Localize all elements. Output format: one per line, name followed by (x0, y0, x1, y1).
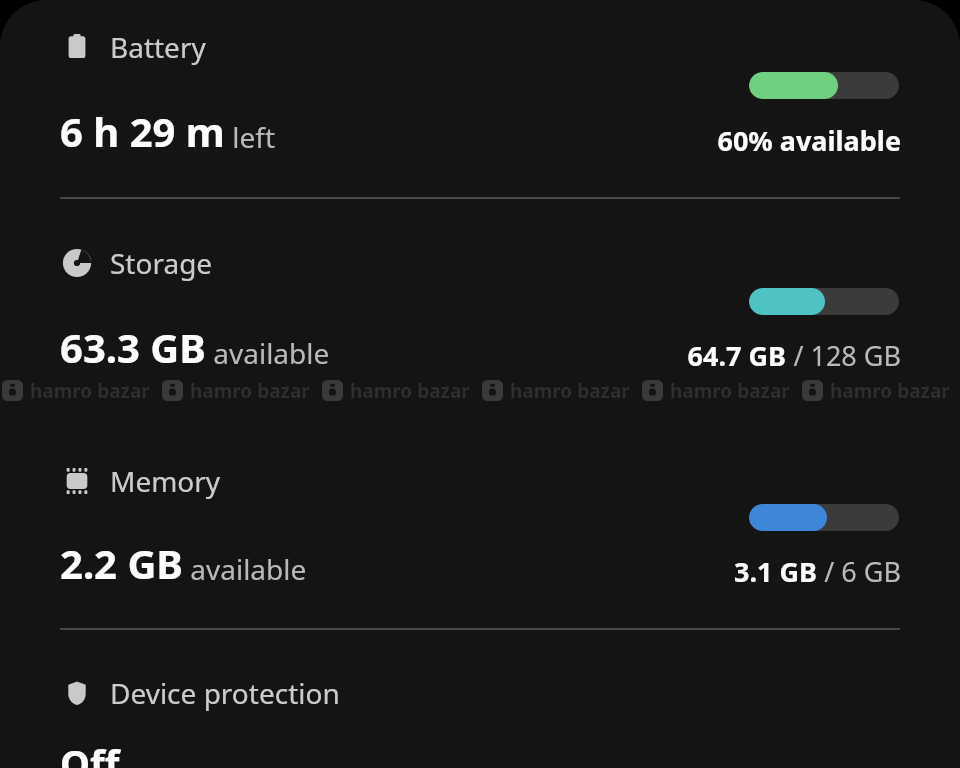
other: Storage (62, 248, 92, 278)
staticText: 6 h 29 m (60, 104, 225, 158)
staticText: 60% available (717, 122, 901, 159)
staticText: 64.7 GB (687, 337, 786, 374)
staticText: hamro bazar (190, 378, 310, 404)
staticText: Off (60, 737, 120, 768)
staticText: 63.3 GB (60, 320, 206, 374)
staticText: Battery (110, 28, 206, 66)
staticText: 2.2 GB (60, 536, 183, 590)
other: Memory (62, 466, 92, 496)
staticText: Memory (110, 462, 221, 500)
staticText: hamro bazar (30, 378, 150, 404)
staticText: hamro bazar (350, 378, 470, 404)
staticText: hamro bazar (830, 378, 950, 404)
button[interactable]: Battery (0, 0, 960, 198)
button[interactable]: Storage (0, 198, 960, 414)
staticText: / 128 GB (786, 337, 901, 374)
other: Device protection (62, 678, 92, 708)
staticText: available (183, 550, 307, 588)
staticText: / 6 GB (817, 553, 901, 590)
staticText: 3.1 GB (734, 553, 817, 590)
staticText: left (225, 118, 276, 156)
staticText: hamro bazar (670, 378, 790, 404)
staticText: Storage (110, 244, 213, 282)
button[interactable]: Device protection (0, 629, 960, 768)
staticText: Device protection (110, 674, 340, 712)
staticText: hamro bazar (510, 378, 630, 404)
other: Battery (62, 32, 92, 62)
button[interactable]: Memory (0, 414, 960, 629)
staticText: available (206, 334, 330, 372)
